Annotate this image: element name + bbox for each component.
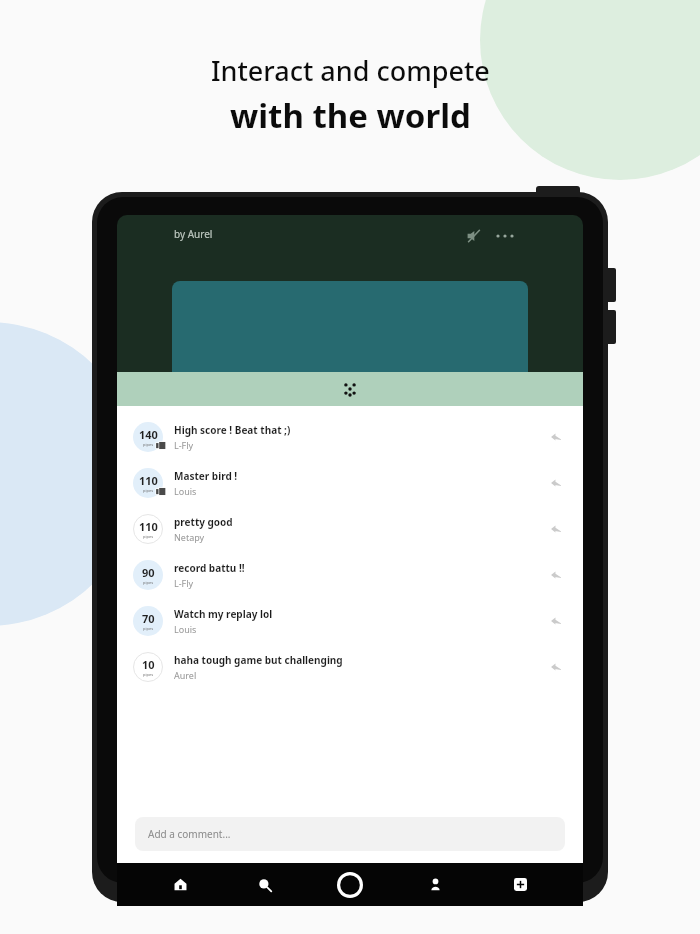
staticText: 110 xyxy=(139,519,158,534)
staticText: Aurel xyxy=(174,669,197,681)
staticText: Interact and compete xyxy=(211,52,490,89)
staticText: pipes xyxy=(143,672,154,677)
button[interactable]: 90 xyxy=(117,552,583,598)
staticText: record battu !! xyxy=(174,561,245,575)
staticText: Add a comment... xyxy=(148,827,231,841)
staticText: pipes xyxy=(143,534,154,539)
staticText: 10 xyxy=(142,657,155,672)
button[interactable]: Reply xyxy=(545,564,567,586)
button[interactable]: Add a comment... xyxy=(135,817,565,851)
staticText: haha tough game but challenging xyxy=(174,653,343,667)
staticText: Master bird ! xyxy=(174,469,238,483)
button[interactable]: 10 xyxy=(117,644,583,690)
staticText: L-Fly xyxy=(174,439,194,451)
button[interactable]: Reply xyxy=(545,472,567,494)
button[interactable]: Drag handle xyxy=(117,372,583,406)
staticText: Louis xyxy=(174,485,197,497)
button[interactable]: Reply xyxy=(545,518,567,540)
staticText: pipes xyxy=(143,488,154,493)
staticText: 110 xyxy=(139,473,158,488)
staticText: Watch my replay lol xyxy=(174,607,273,621)
staticText: with the world xyxy=(230,93,471,138)
button[interactable]: More options xyxy=(492,223,518,249)
staticText: 140 xyxy=(139,427,158,442)
button[interactable]: 70 xyxy=(117,598,583,644)
staticText: L-Fly xyxy=(174,577,194,589)
button[interactable]: Mute sound xyxy=(461,223,487,249)
button[interactable]: Reply xyxy=(545,610,567,632)
button[interactable]: 140 xyxy=(117,414,583,460)
button[interactable]: Search xyxy=(243,863,287,906)
staticText: Netapy xyxy=(174,531,205,543)
button[interactable]: Home xyxy=(158,863,202,906)
staticText: High score ! Beat that ;) xyxy=(174,423,291,437)
button[interactable]: Reply xyxy=(545,656,567,678)
button[interactable]: Create xyxy=(498,863,542,906)
button[interactable]: 110 xyxy=(117,506,583,552)
button[interactable]: Play xyxy=(328,863,372,906)
staticText: pretty good xyxy=(174,515,233,529)
staticText: Louis xyxy=(174,623,197,635)
staticText: pipes xyxy=(143,442,154,447)
staticText: pipes xyxy=(143,626,154,631)
staticText: by Aurel xyxy=(174,227,213,241)
button[interactable]: Profile xyxy=(413,863,457,906)
staticText: 90 xyxy=(142,565,155,580)
button[interactable]: 110 xyxy=(117,460,583,506)
staticText: pipes xyxy=(143,580,154,585)
button[interactable]: Reply xyxy=(545,426,567,448)
staticText: 70 xyxy=(142,611,155,626)
